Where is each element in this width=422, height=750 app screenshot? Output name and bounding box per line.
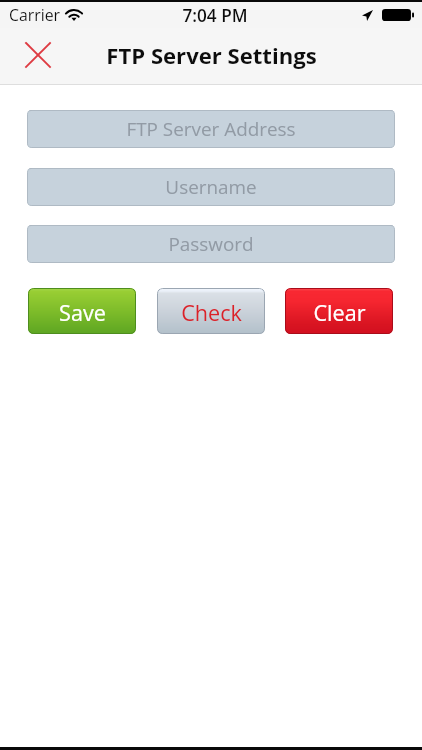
staticText: Carrier [9,4,60,26]
staticText: Password [168,231,254,257]
button[interactable]: FTP Server Address [27,110,395,148]
button[interactable]: Close [17,34,59,76]
staticText: FTP Server Address [126,116,296,142]
button[interactable]: Username [27,168,395,206]
staticText: FTP Server Settings [106,40,317,70]
button[interactable]: Clear [285,288,393,334]
staticText: Clear [313,298,366,327]
staticText: Username [165,174,257,200]
button[interactable]: Password [27,225,395,263]
button[interactable]: Save [28,288,136,334]
staticText: 7:04 PM [182,4,248,27]
staticText: Check [181,298,242,327]
staticText: Save [59,298,106,327]
button[interactable]: Check [157,288,265,334]
